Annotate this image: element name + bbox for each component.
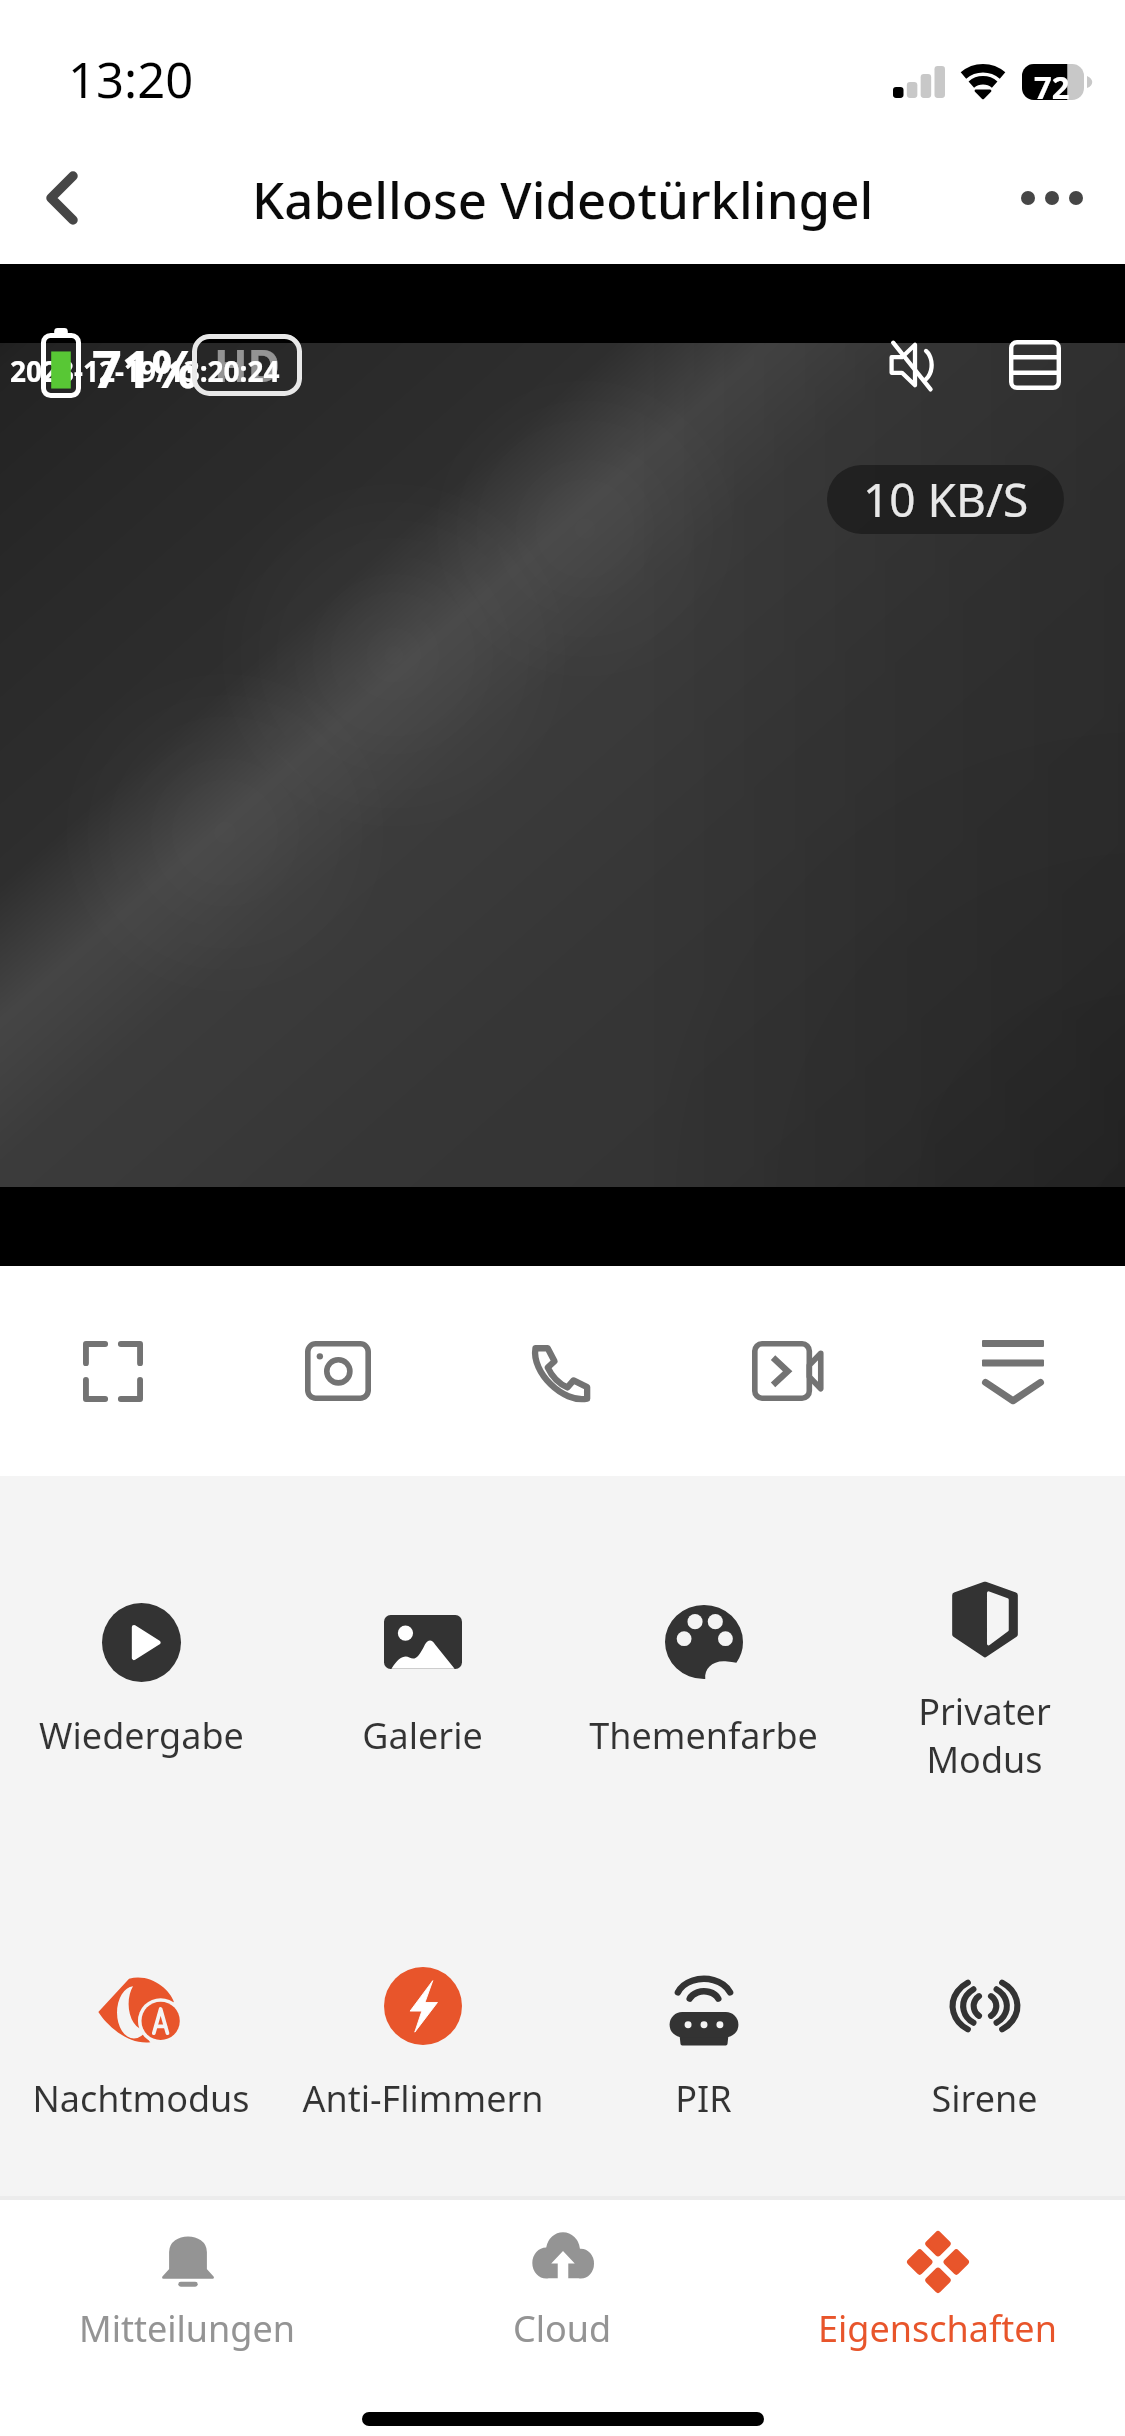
button[interactable]: More options: [986, 132, 1118, 264]
button[interactable]: Snapshot: [225, 1266, 450, 1476]
staticText: 13:20: [68, 46, 194, 113]
button[interactable]: Cloud: [375, 2196, 750, 2396]
staticText: 10 KB/S: [863, 468, 1029, 531]
staticText: Eigenschaften: [818, 2304, 1057, 2353]
staticText: Sirene: [931, 2074, 1038, 2123]
staticText: Kabellose Videotürklingel: [252, 164, 874, 233]
staticText: 2023-12-19/13:20:24: [10, 352, 280, 390]
staticText: Privater Modus: [918, 1687, 1051, 1783]
button[interactable]: Themenfarbe: [563, 1583, 844, 1813]
button[interactable]: Mute: [879, 329, 951, 401]
staticText: Galerie: [362, 1711, 483, 1760]
button[interactable]: Sirene: [844, 1953, 1125, 2183]
staticText: Themenfarbe: [589, 1711, 818, 1760]
button[interactable]: Wiedergabe: [0, 1583, 282, 1813]
button[interactable]: Anti-Flimmern: [282, 1953, 563, 2183]
button[interactable]: Galerie: [282, 1583, 563, 1813]
staticText: Cloud: [513, 2304, 612, 2353]
button[interactable]: Mitteilungen: [0, 2196, 375, 2396]
button[interactable]: Split view: [999, 329, 1071, 401]
button[interactable]: Eigenschaften: [750, 2196, 1125, 2396]
staticText: Mitteilungen: [79, 2304, 296, 2353]
staticText: Nachtmodus: [32, 2074, 250, 2123]
button[interactable]: PIR: [563, 1953, 844, 2183]
button[interactable]: Talk: [450, 1266, 675, 1476]
button[interactable]: Back: [8, 132, 116, 264]
button[interactable]: Record: [675, 1266, 900, 1476]
button[interactable]: Nachtmodus: [0, 1953, 282, 2183]
button[interactable]: Fullscreen: [0, 1266, 225, 1476]
staticText: PIR: [675, 2074, 732, 2123]
button[interactable]: Privater Modus: [844, 1583, 1125, 1813]
staticText: Wiedergabe: [39, 1711, 244, 1760]
staticText: 71%: [92, 332, 199, 403]
button[interactable]: More controls: [900, 1266, 1125, 1476]
button[interactable]: HD quality: [192, 334, 302, 396]
staticText: HD: [214, 335, 280, 395]
staticText: 72: [1034, 66, 1070, 108]
staticText: Anti-Flimmern: [302, 2074, 544, 2123]
